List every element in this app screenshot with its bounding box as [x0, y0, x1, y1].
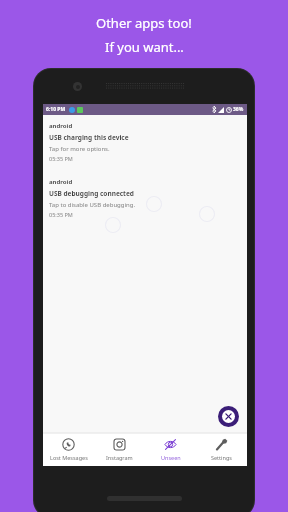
- staticText: Lost Messages: [50, 454, 88, 461]
- staticText: Instagram: [106, 454, 133, 461]
- staticText: USB charging this device: [49, 133, 129, 142]
- staticText: USB debugging connected: [49, 189, 134, 198]
- button[interactable]: android: [49, 177, 247, 219]
- staticText: 6:10 PM: [46, 106, 66, 113]
- button[interactable]: Unseen: [145, 433, 196, 466]
- staticText: 05:35 PM: [49, 155, 73, 162]
- staticText: Unseen: [161, 454, 181, 461]
- button[interactable]: Settings: [196, 433, 247, 466]
- staticText: 05:35 PM: [49, 211, 73, 218]
- staticText: 36%: [233, 106, 244, 113]
- staticText: If you want...: [105, 38, 184, 56]
- staticText: Other apps too!: [96, 14, 192, 32]
- staticText: android: [49, 178, 73, 186]
- button[interactable]: Instagram: [94, 433, 145, 466]
- button[interactable]: android: [49, 121, 247, 163]
- button[interactable]: Close: [218, 406, 239, 427]
- staticText: android: [49, 122, 73, 130]
- staticText: Tap for more options.: [49, 145, 110, 153]
- staticText: Settings: [211, 454, 232, 461]
- button[interactable]: Lost Messages: [43, 433, 94, 466]
- staticText: Tap to disable USB debugging.: [49, 201, 136, 209]
